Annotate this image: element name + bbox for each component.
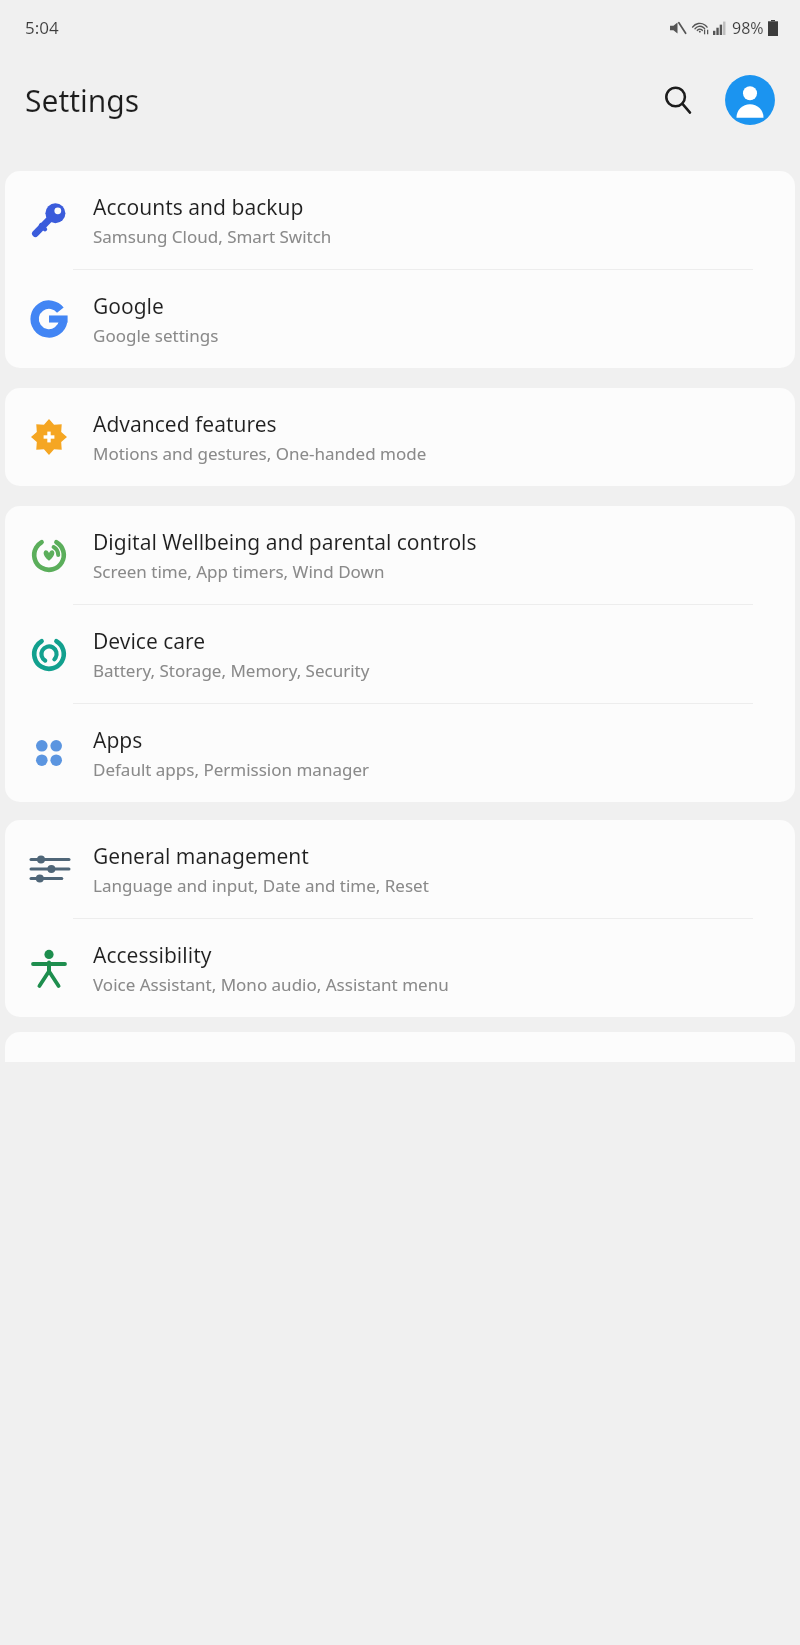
- staticText: Digital Wellbeing and parental controls: [93, 528, 477, 557]
- staticText: Battery, Storage, Memory, Security: [93, 659, 370, 682]
- button[interactable]: General management: [5, 820, 795, 918]
- staticText: Google: [93, 292, 164, 321]
- button[interactable]: Google: [5, 270, 795, 368]
- staticText: Advanced features: [93, 410, 277, 439]
- staticText: General management: [93, 842, 309, 871]
- staticText: 5:04: [25, 16, 59, 39]
- staticText: Accounts and backup: [93, 193, 304, 222]
- staticText: Screen time, App timers, Wind Down: [93, 560, 385, 583]
- staticText: Apps: [93, 726, 143, 755]
- staticText: Device care: [93, 627, 206, 656]
- button[interactable]: Accessibility: [5, 919, 795, 1017]
- staticText: Google settings: [93, 324, 219, 347]
- staticText: Default apps, Permission manager: [93, 758, 369, 781]
- button[interactable]: Search: [652, 74, 704, 126]
- button[interactable]: Digital Wellbeing and parental controls: [5, 506, 795, 604]
- staticText: Motions and gestures, One-handed mode: [93, 442, 427, 465]
- button[interactable]: Device care: [5, 605, 795, 703]
- staticText: Accessibility: [93, 941, 212, 970]
- button[interactable]: Apps: [5, 704, 795, 802]
- staticText: Language and input, Date and time, Reset: [93, 874, 429, 897]
- button[interactable]: Account: [724, 74, 776, 126]
- staticText: 98%: [732, 17, 764, 39]
- staticText: Settings: [25, 80, 140, 121]
- staticText: Samsung Cloud, Smart Switch: [93, 225, 332, 248]
- staticText: Voice Assistant, Mono audio, Assistant m…: [93, 973, 449, 996]
- button[interactable]: Accounts and backup: [5, 171, 795, 269]
- button[interactable]: Advanced features: [5, 388, 795, 486]
